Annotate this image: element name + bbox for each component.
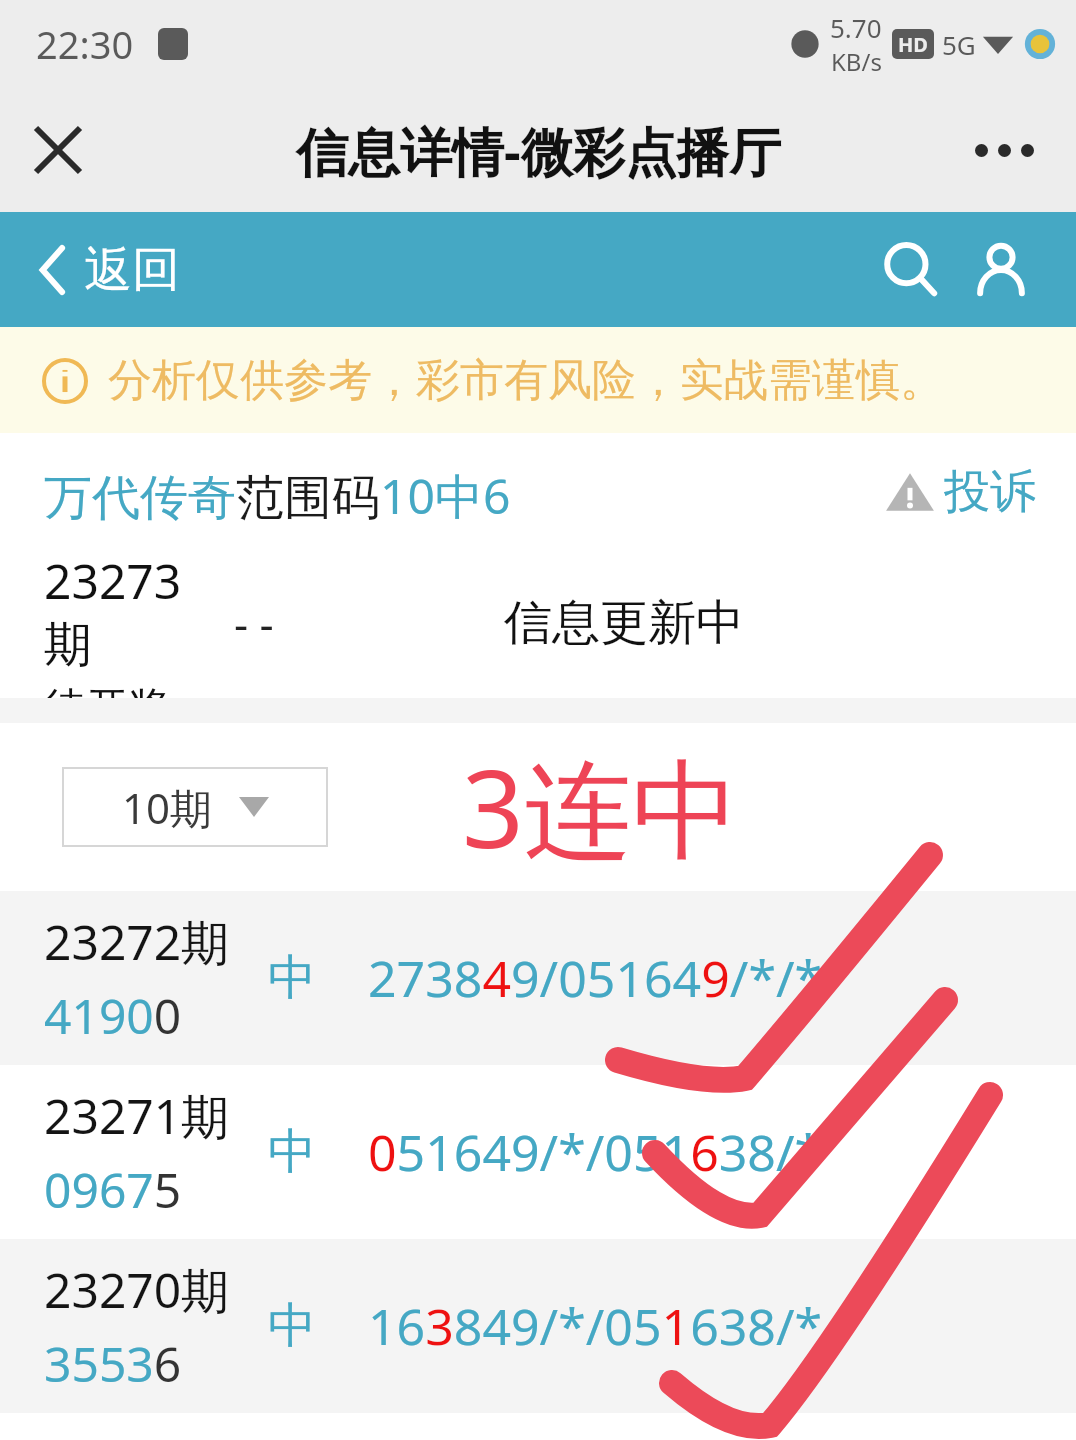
staticText: 23273期: [44, 548, 224, 676]
staticText: 051649/*/051638/*: [368, 1118, 823, 1186]
staticText: 信息更新中: [504, 593, 744, 653]
staticText: 分析仅供参考，彩市有风险，实战需谨慎。: [108, 353, 944, 408]
button[interactable]: 返回: [0, 230, 200, 310]
staticText: 41900: [44, 983, 182, 1048]
staticText: 23272期: [44, 909, 230, 975]
staticText: 待开奖: [44, 682, 170, 698]
staticText: 35536: [44, 1331, 182, 1396]
button[interactable]: Profile: [956, 225, 1046, 315]
staticText: 3连中: [462, 733, 740, 881]
staticText: 163849/*/051638/*: [368, 1292, 823, 1360]
button[interactable]: 10期: [62, 767, 328, 847]
button[interactable]: Close: [20, 112, 96, 188]
staticText: 22:30: [36, 18, 134, 70]
staticText: 273849/051649/*/*: [368, 944, 823, 1012]
button[interactable]: 投诉: [884, 463, 1036, 521]
staticText: 中: [268, 1122, 316, 1182]
staticText: 23270期: [44, 1257, 230, 1323]
staticText: 10期: [122, 779, 213, 836]
button[interactable]: Search: [866, 225, 956, 315]
button[interactable]: 万代传奇范围码10中6: [44, 463, 511, 529]
staticText: 返回: [84, 240, 180, 300]
staticText: 信息详情-微彩点播厅: [296, 115, 781, 186]
staticText: 23271期: [44, 1083, 230, 1149]
staticText: 万代传奇范围码10中6: [44, 463, 511, 529]
staticText: 投诉: [944, 463, 1036, 521]
staticText: 中: [268, 948, 316, 1008]
button[interactable]: More options: [967, 136, 1042, 165]
staticText: HD: [898, 31, 928, 58]
staticText: - -: [234, 593, 274, 653]
button[interactable]: 23271期: [0, 1065, 1076, 1239]
staticText: 09675: [44, 1157, 182, 1222]
staticText: 5G: [942, 27, 976, 62]
button[interactable]: 23272期: [0, 891, 1076, 1065]
button[interactable]: 23270期: [0, 1239, 1076, 1413]
staticText: 5.70: [830, 10, 882, 45]
staticText: KB/s: [831, 45, 882, 78]
staticText: 中: [268, 1296, 316, 1356]
